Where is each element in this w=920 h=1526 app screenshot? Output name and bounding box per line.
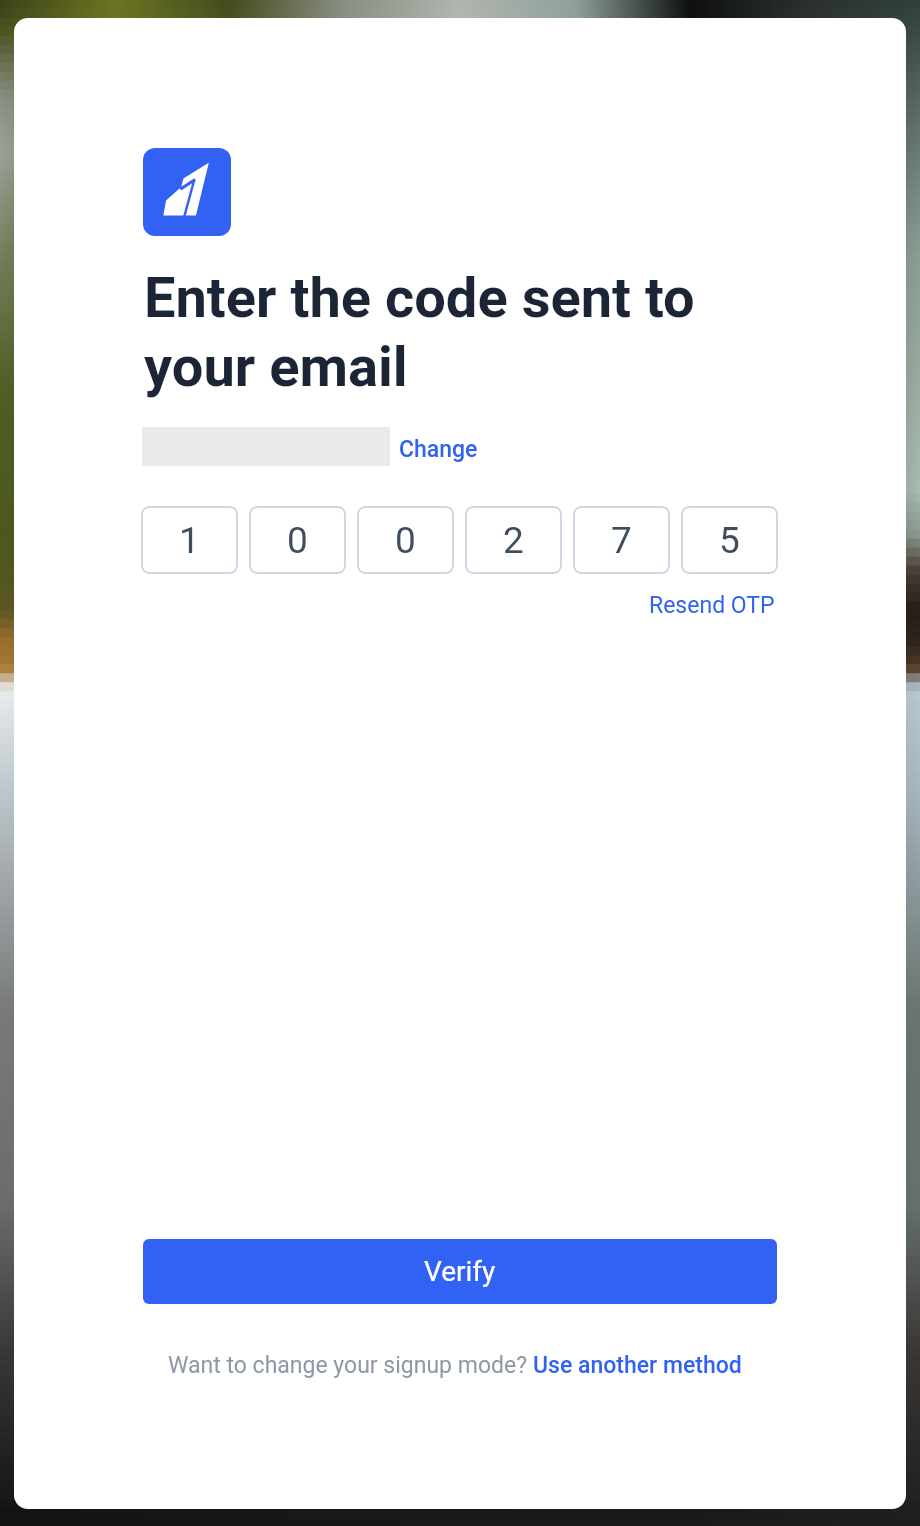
staticText: Change xyxy=(399,436,478,463)
button[interactable]: 2 xyxy=(465,506,562,574)
button[interactable]: 0 xyxy=(357,506,454,574)
button[interactable]: Change xyxy=(399,436,478,463)
staticText: 7 xyxy=(611,519,632,562)
button[interactable]: Use another method xyxy=(533,1352,742,1379)
staticText: Want to change your signup mode? xyxy=(168,1352,533,1379)
staticText: 2 xyxy=(503,519,524,562)
staticText: 5 xyxy=(719,519,740,562)
staticText: 1 xyxy=(179,519,200,562)
other: App logo xyxy=(143,148,231,236)
staticText: 0 xyxy=(395,519,416,562)
staticText: Enter the code sent to your email xyxy=(144,265,695,399)
button[interactable]: Resend OTP xyxy=(649,592,775,619)
staticText: Resend OTP xyxy=(649,592,775,619)
button[interactable]: 5 xyxy=(681,506,778,574)
button[interactable]: 0 xyxy=(249,506,346,574)
button[interactable]: 7 xyxy=(573,506,670,574)
staticText: 0 xyxy=(287,519,308,562)
staticText: Use another method xyxy=(533,1352,742,1379)
button[interactable]: Verify xyxy=(143,1239,777,1304)
staticText: Verify xyxy=(424,1255,496,1288)
button[interactable]: 1 xyxy=(141,506,238,574)
